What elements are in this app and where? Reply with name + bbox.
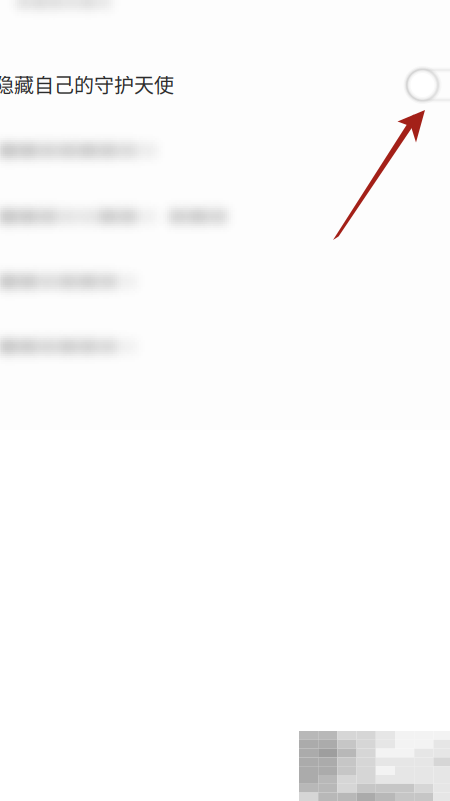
- button[interactable]: 隐藏自己的守护天使: [0, 56, 450, 114]
- staticText: 隐藏自己的守护天使: [0, 69, 174, 98]
